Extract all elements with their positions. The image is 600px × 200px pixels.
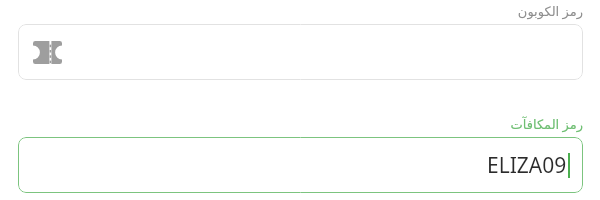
staticText: ELIZA09 [487, 151, 567, 180]
staticText: رمز المكافآت [510, 115, 583, 133]
other: Coupon [33, 41, 62, 64]
staticText: رمز الكوبون [517, 2, 583, 20]
button[interactable]: Coupon [18, 24, 583, 80]
button[interactable]: ELIZA09 [18, 137, 583, 193]
